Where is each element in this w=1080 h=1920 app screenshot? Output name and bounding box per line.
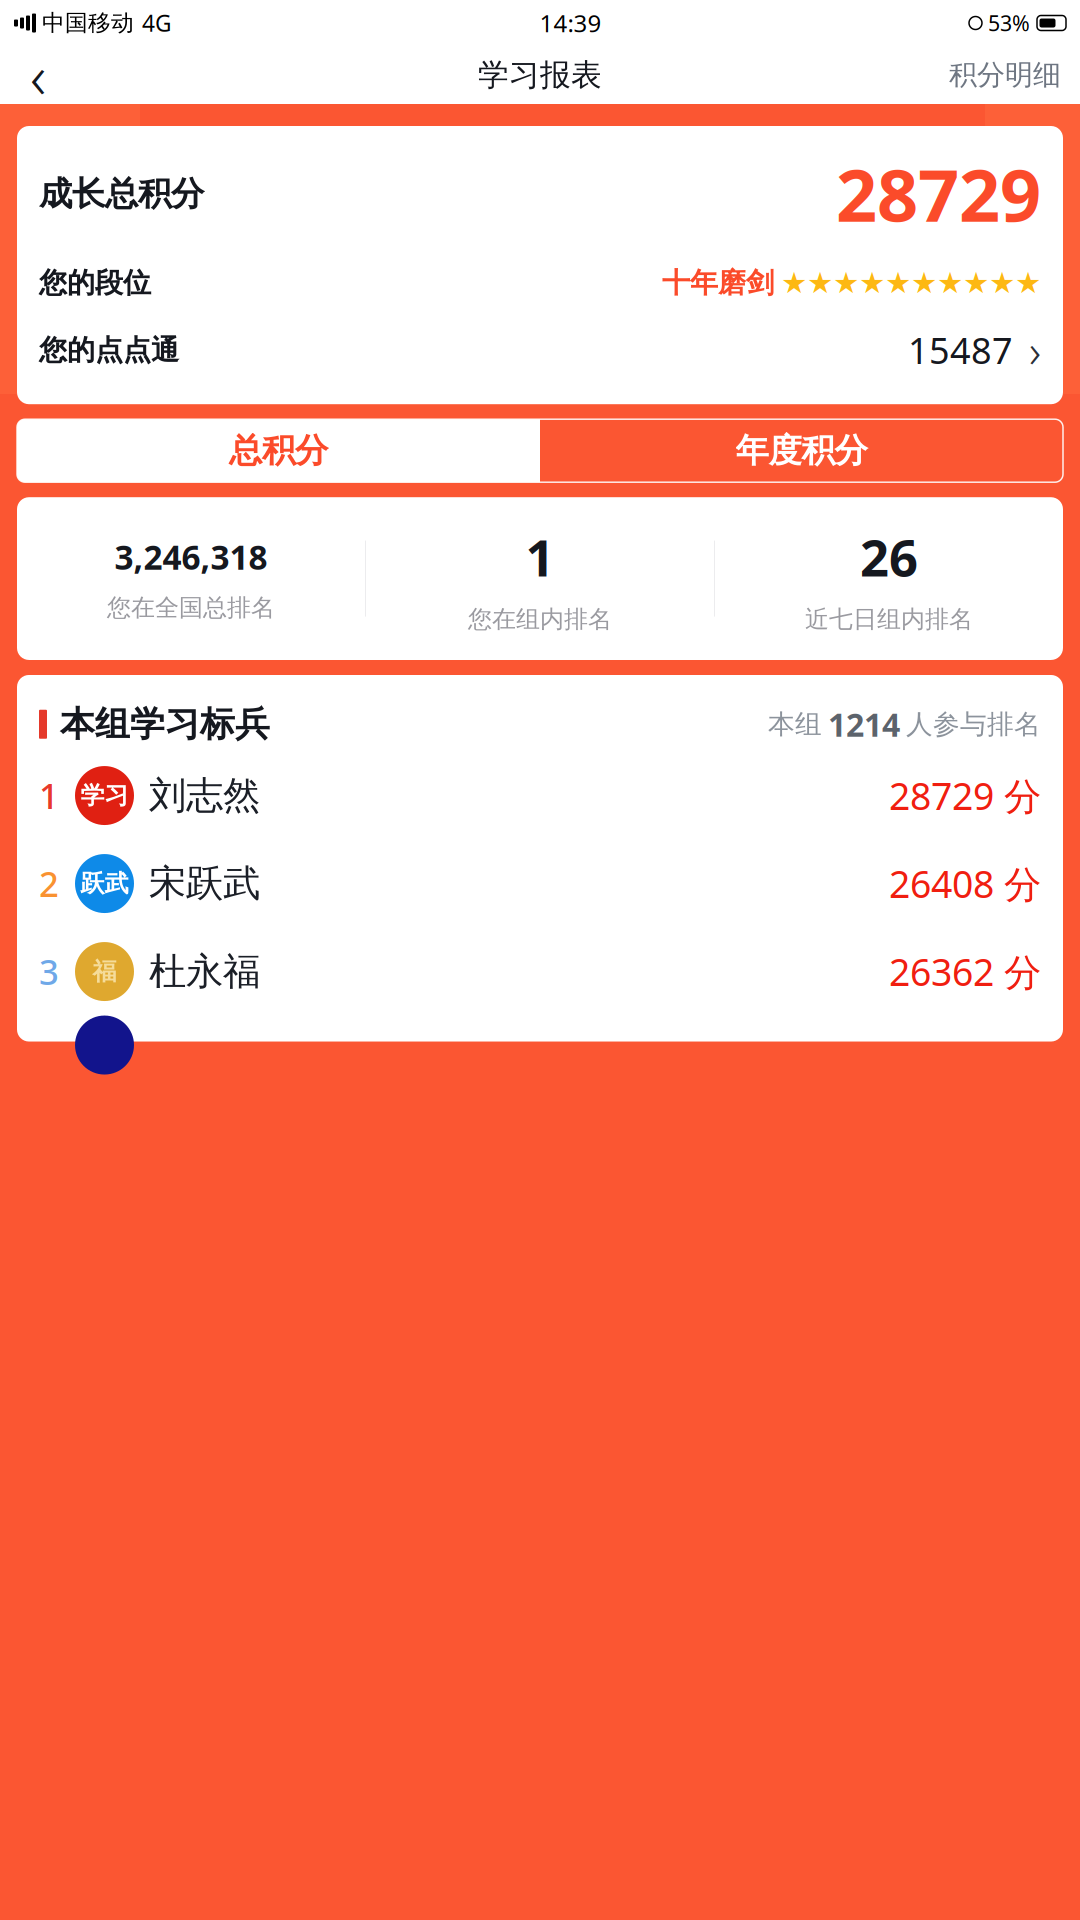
staticText: 26 bbox=[860, 523, 918, 590]
staticText: 刘志然 bbox=[149, 773, 260, 818]
staticText: 4G bbox=[142, 8, 172, 38]
staticText: 本组学习标兵 bbox=[60, 703, 270, 746]
staticText: ★★★★★★★★★★ bbox=[781, 266, 1041, 299]
button[interactable]: 返回 bbox=[13, 50, 63, 100]
staticText: 总积分 bbox=[229, 430, 328, 471]
staticText: 1 bbox=[525, 523, 554, 590]
button[interactable]: 3 bbox=[39, 927, 1041, 1015]
staticText: 十年磨剑 bbox=[662, 266, 774, 300]
button[interactable]: 1 bbox=[39, 751, 1041, 839]
staticText: 28729 分 bbox=[889, 771, 1041, 820]
staticText: 2 bbox=[39, 860, 59, 906]
button[interactable]: 2 bbox=[39, 839, 1041, 927]
staticText: 学习 bbox=[80, 781, 128, 810]
staticText: 人参与排名 bbox=[906, 708, 1041, 741]
staticText: 积分明细 bbox=[949, 58, 1061, 92]
staticText: 您在组内排名 bbox=[468, 604, 612, 634]
staticText: 中国移动 bbox=[42, 9, 134, 37]
staticText: 3 bbox=[39, 948, 59, 994]
staticText: 26408 分 bbox=[889, 859, 1041, 908]
staticText: 26362 分 bbox=[889, 947, 1041, 996]
staticText: 28729 bbox=[836, 146, 1041, 242]
staticText: 您在全国总排名 bbox=[107, 593, 275, 622]
staticText: 杜永福 bbox=[149, 949, 260, 994]
staticText: 53% bbox=[988, 9, 1030, 37]
staticText: 年度积分 bbox=[735, 430, 867, 471]
staticText: 宋跃武 bbox=[149, 861, 260, 906]
button[interactable]: 积分明细 bbox=[943, 50, 1067, 100]
staticText: 近七日组内排名 bbox=[805, 604, 973, 634]
staticText: 15487 bbox=[908, 326, 1013, 374]
staticText: 福 bbox=[92, 957, 116, 986]
staticText: 14:39 bbox=[539, 7, 601, 39]
button[interactable]: 年度积分 bbox=[540, 419, 1063, 482]
staticText: › bbox=[1029, 320, 1041, 380]
staticText: 成长总积分 bbox=[39, 173, 204, 214]
staticText: 跃武 bbox=[80, 869, 128, 898]
staticText: 本组 bbox=[768, 708, 822, 741]
button[interactable]: 您的点点通 bbox=[17, 300, 1063, 404]
button[interactable]: 总积分 bbox=[17, 419, 540, 482]
staticText: 学习报表 bbox=[478, 56, 602, 94]
staticText: 1214 bbox=[828, 703, 900, 745]
staticText: 您的点点通 bbox=[39, 333, 179, 367]
staticText: 您的段位 bbox=[39, 266, 151, 300]
staticText: 3,246,318 bbox=[114, 535, 267, 579]
staticText: 1 bbox=[39, 772, 59, 818]
staticText: ‹ bbox=[30, 34, 46, 116]
